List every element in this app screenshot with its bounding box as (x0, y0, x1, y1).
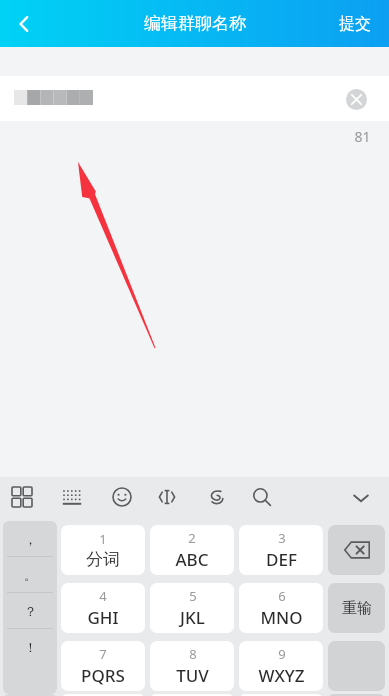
button[interactable]: Clear text (341, 84, 371, 114)
staticText: TUV (176, 664, 209, 687)
staticText: 。 (24, 567, 37, 583)
staticText: 提交 (339, 14, 371, 34)
staticText: GHI (87, 606, 119, 629)
button[interactable]: Back (0, 0, 48, 47)
button[interactable]: ， (3, 521, 57, 556)
button[interactable]: Search (242, 477, 282, 517)
staticText: 81 (354, 127, 371, 146)
staticText: 重输 (342, 599, 372, 618)
staticText: WXYZ (258, 664, 305, 687)
button[interactable]: 5 (150, 583, 234, 633)
button[interactable]: 提交 (331, 8, 379, 40)
button[interactable]: 6 (239, 583, 323, 633)
staticText: PQRS (81, 664, 125, 687)
button[interactable]: Attachment (196, 477, 236, 517)
staticText: ， (24, 531, 37, 547)
staticText: 编辑群聊名称 (144, 13, 246, 34)
staticText: 8 (189, 645, 197, 663)
button[interactable]: Apps (2, 477, 42, 517)
button[interactable]: 4 (61, 583, 145, 633)
button[interactable]: 2 (150, 525, 234, 575)
button[interactable]: Clear text (0, 76, 389, 121)
button[interactable]: 1 (61, 525, 145, 575)
staticText: DEF (266, 548, 297, 571)
button[interactable]: Text selection (147, 477, 187, 517)
staticText: MNO (260, 606, 303, 629)
button[interactable]: 。 (3, 557, 57, 592)
button[interactable]: ！ (3, 629, 57, 664)
button[interactable]: Enter (328, 694, 385, 696)
button[interactable]: 重输 (328, 583, 385, 633)
button[interactable]: Key (239, 694, 323, 696)
button[interactable]: Keyboard layout (52, 477, 92, 517)
staticText: 2 (188, 529, 196, 547)
staticText: JKL (180, 606, 205, 629)
staticText: 4 (99, 587, 107, 605)
staticText: ！ (24, 639, 37, 655)
button[interactable]: 3 (239, 525, 323, 575)
staticText: 6 (278, 587, 286, 605)
staticText: 3 (278, 529, 286, 547)
button[interactable]: Emoji (102, 477, 142, 517)
staticText: 1 (99, 530, 107, 548)
staticText: 9 (278, 645, 286, 663)
staticText: 分词 (86, 549, 120, 570)
button[interactable]: 7 (61, 641, 145, 691)
button[interactable]: Symbols (3, 694, 57, 696)
staticText: 5 (189, 587, 197, 605)
button[interactable]: ？ (3, 593, 57, 628)
button[interactable]: Backspace (328, 525, 385, 575)
button[interactable]: Key (61, 694, 145, 696)
staticText: ABC (175, 548, 209, 571)
button[interactable]: Hide keyboard (341, 478, 381, 518)
button[interactable]: 9 (239, 641, 323, 691)
button[interactable]: 8 (150, 641, 234, 691)
staticText: ？ (24, 603, 37, 619)
staticText: 7 (99, 645, 107, 663)
button[interactable]: Key (150, 694, 234, 696)
